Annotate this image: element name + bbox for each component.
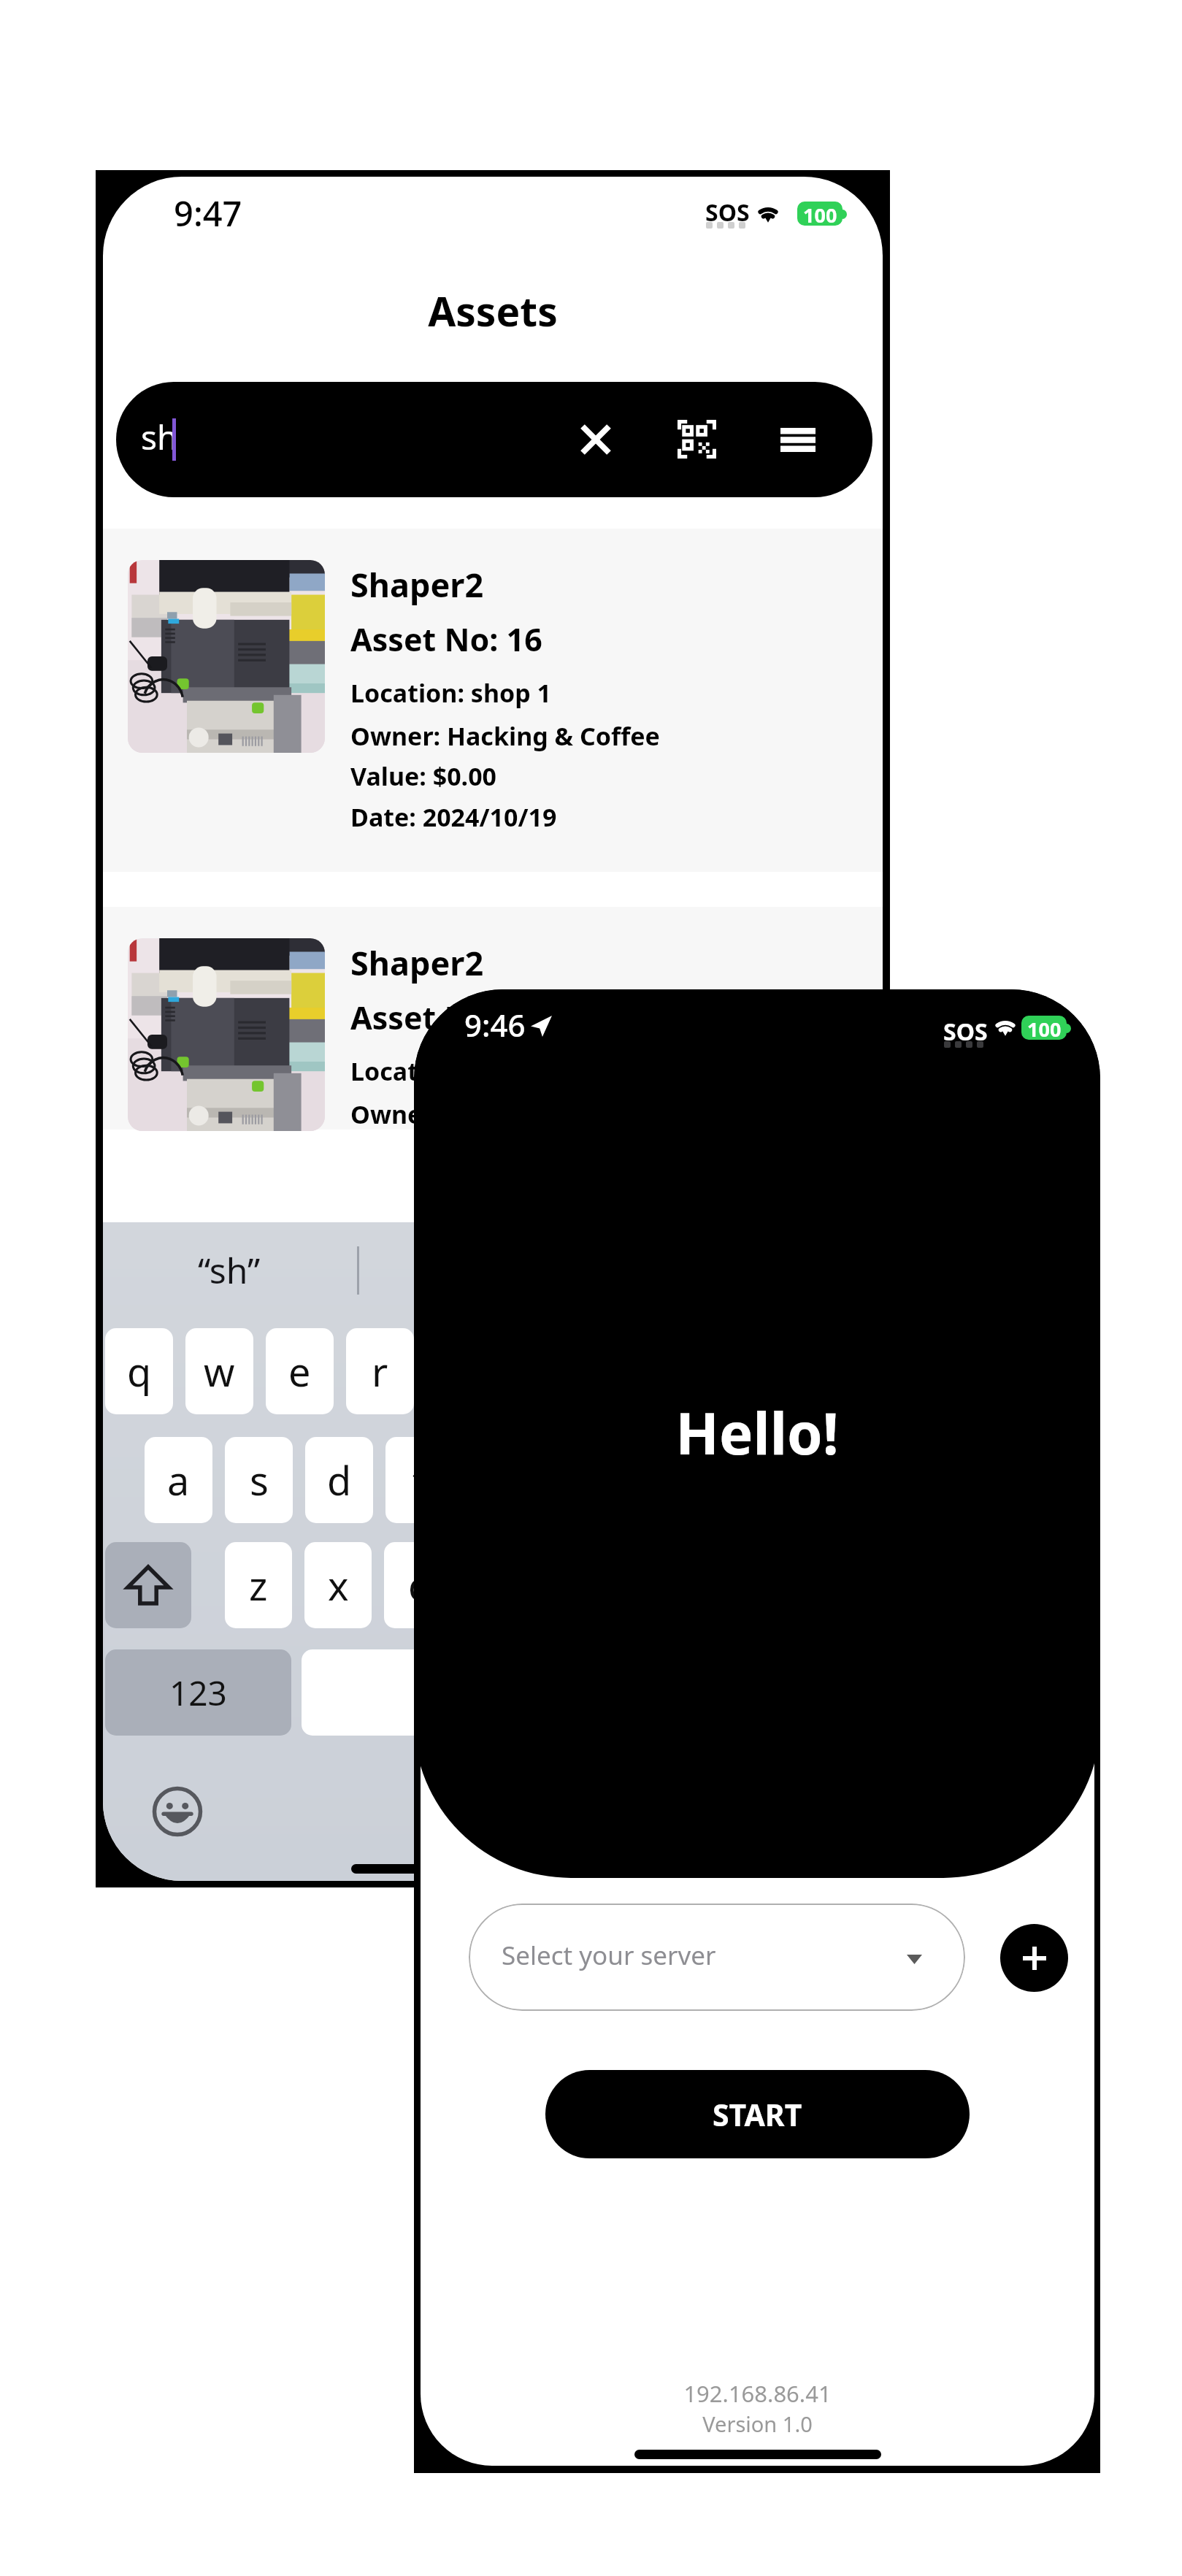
staticText: Value: $0.00 <box>350 759 497 793</box>
button[interactable]: 123 <box>105 1649 291 1736</box>
button[interactable]: c <box>384 1542 451 1628</box>
button[interactable]: Space <box>302 1649 747 1736</box>
staticText: 100 <box>1027 1016 1062 1040</box>
staticText: Shaper2 <box>350 562 484 607</box>
staticText: z <box>249 1558 268 1612</box>
button[interactable]: o <box>748 1328 815 1414</box>
button[interactable]: j <box>626 1437 694 1523</box>
button[interactable]: Emoji keyboard <box>152 1786 203 1837</box>
button[interactable]: l <box>787 1437 855 1523</box>
button[interactable]: Scan QR code <box>660 402 733 475</box>
button[interactable]: Shaper2 <box>103 529 883 872</box>
staticText: x <box>328 1558 349 1612</box>
staticText: sh <box>141 414 178 460</box>
button[interactable]: f <box>385 1437 453 1523</box>
button[interactable]: z <box>225 1542 292 1628</box>
button[interactable]: Clear search <box>559 403 632 476</box>
staticText: c <box>408 1558 427 1612</box>
staticText: Date: 2024/10/19 <box>350 800 557 834</box>
staticText: Select your server <box>502 1938 716 1973</box>
staticText: f <box>412 1453 426 1507</box>
staticText: Shaper2 <box>350 940 484 985</box>
button[interactable]: Shaper2 <box>103 907 883 1130</box>
button[interactable]: d <box>305 1437 373 1523</box>
staticText: Owner: Hacking & Coffee <box>350 1097 660 1131</box>
button[interactable]: i <box>667 1328 735 1414</box>
staticText: d <box>327 1453 352 1507</box>
button[interactable]: START <box>545 2070 970 2158</box>
button[interactable]: q <box>105 1328 173 1414</box>
button[interactable]: r <box>346 1328 414 1414</box>
button[interactable]: sh <box>116 382 872 497</box>
button[interactable]: w <box>185 1328 253 1414</box>
staticText: SOS <box>705 196 750 229</box>
staticText: a <box>167 1453 190 1507</box>
staticText: 192.168.86.41 <box>421 2378 1094 2409</box>
staticText: 123 <box>169 1670 227 1716</box>
staticText: Owner: Hacking & Coffee <box>350 719 660 753</box>
staticText: e <box>288 1344 311 1398</box>
staticText: Hello! <box>414 1394 1100 1471</box>
staticText: 9:47 <box>174 190 242 237</box>
staticText: w <box>204 1344 235 1398</box>
staticText: SOS <box>943 1016 988 1048</box>
staticText: Location: shop 1 <box>350 676 552 710</box>
staticText: s <box>250 1453 269 1507</box>
button[interactable]: Add server <box>1000 1924 1068 1992</box>
staticText: Location: shop 1 <box>350 1054 552 1088</box>
staticText: START <box>713 2094 802 2135</box>
button[interactable]: Menu <box>761 403 834 476</box>
button[interactable]: k <box>707 1437 775 1523</box>
button[interactable]: p <box>828 1328 883 1414</box>
staticText: Assets <box>103 283 883 338</box>
button[interactable]: a <box>145 1437 212 1523</box>
staticText: Asset No: 16 <box>350 996 542 1039</box>
staticText: “sh” <box>198 1246 261 1294</box>
staticText: r <box>372 1344 388 1398</box>
staticText: Version 1.0 <box>421 2410 1094 2438</box>
staticText: 9:46 <box>464 1004 526 1046</box>
button[interactable]: e <box>266 1328 334 1414</box>
staticText: k <box>730 1453 751 1507</box>
button[interactable]: s <box>225 1437 293 1523</box>
staticText: q <box>127 1344 152 1398</box>
button[interactable]: Select your server <box>469 1904 965 2011</box>
button[interactable]: x <box>304 1542 372 1628</box>
staticText: 100 <box>803 202 837 226</box>
button[interactable]: Shift <box>105 1542 191 1628</box>
staticText: Asset No: 16 <box>350 618 542 661</box>
